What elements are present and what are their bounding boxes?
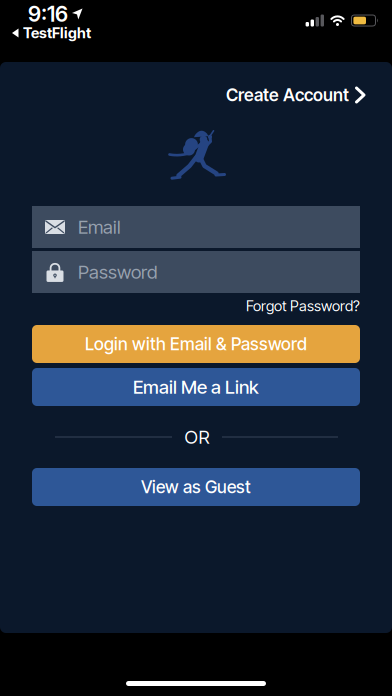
button[interactable]: Email <box>32 206 360 248</box>
button[interactable]: Email Me a Link <box>32 368 360 406</box>
staticText: OR <box>184 426 209 448</box>
staticText: 9:16 <box>28 1 68 27</box>
button[interactable]: Create Account <box>226 85 366 105</box>
button[interactable]: Password <box>32 251 360 293</box>
staticText: Forgot Password? <box>246 297 360 315</box>
staticText: Password <box>78 261 157 283</box>
staticText: Email Me a Link <box>133 376 259 398</box>
staticText: Email <box>78 216 121 238</box>
button[interactable]: Forgot Password? <box>246 297 360 315</box>
staticText: Create Account <box>226 85 349 105</box>
button[interactable]: View as Guest <box>32 468 360 506</box>
staticText: TestFlight <box>23 24 91 42</box>
button[interactable]: Login with Email & Password <box>32 325 360 363</box>
staticText: View as Guest <box>141 477 251 497</box>
staticText: Login with Email & Password <box>85 334 307 354</box>
